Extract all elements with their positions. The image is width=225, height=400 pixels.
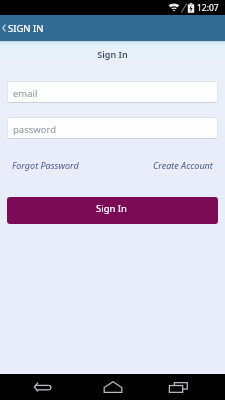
staticText: Create Account — [153, 159, 213, 171]
staticText: Sign In — [0, 48, 225, 60]
button[interactable]: Sign In — [7, 197, 218, 224]
button[interactable]: Forgot Password — [7, 154, 84, 176]
staticText: SIGN IN — [8, 22, 44, 35]
button[interactable]: Back — [0, 374, 75, 400]
button[interactable]: password — [7, 117, 218, 139]
button[interactable]: Home — [75, 374, 150, 400]
button[interactable]: Back — [0, 15, 8, 41]
button[interactable]: Recent apps — [150, 374, 225, 400]
staticText: Forgot Password — [12, 159, 79, 171]
staticText: 12:07 — [197, 2, 219, 14]
staticText: password — [13, 123, 57, 136]
button[interactable]: email — [7, 81, 218, 103]
staticText: email — [13, 87, 38, 100]
button[interactable]: Create Account — [148, 154, 218, 176]
staticText: Sign In — [96, 202, 127, 215]
